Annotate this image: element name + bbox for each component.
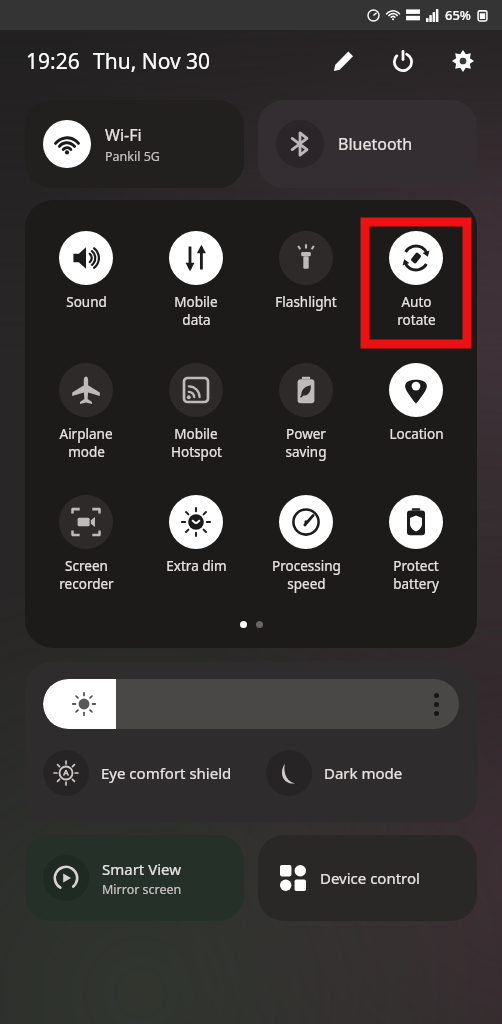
staticText: Protect <box>393 557 439 575</box>
staticText: data <box>182 311 211 329</box>
staticText: Pankil 5G <box>105 148 160 165</box>
staticText: saving <box>285 443 327 461</box>
button[interactable]: Smart View <box>25 835 244 921</box>
staticText: Wi-Fi <box>105 124 142 146</box>
button[interactable]: Bluetooth <box>258 100 477 188</box>
staticText: battery <box>393 575 439 593</box>
button[interactable]: Screen <box>31 495 141 593</box>
staticText: Screen <box>65 557 108 575</box>
staticText: Flashlight <box>275 293 337 311</box>
button[interactable]: Protect <box>361 495 471 593</box>
staticText: Extra dim <box>166 557 227 575</box>
staticText: Bluetooth <box>338 133 413 155</box>
staticText: Processing <box>272 557 341 575</box>
staticText: Location <box>389 425 444 443</box>
button[interactable]: Device control <box>258 835 477 921</box>
button[interactable]: Eye comfort shield <box>43 750 266 796</box>
button[interactable]: Location <box>361 363 471 443</box>
staticText: Eye comfort shield <box>101 763 232 783</box>
button[interactable]: Airplane <box>31 363 141 461</box>
button[interactable]: Extra dim <box>141 495 251 575</box>
button[interactable]: Power <box>386 44 420 78</box>
button[interactable]: Auto <box>361 231 471 329</box>
button[interactable]: Edit <box>326 44 360 78</box>
staticText: rotate <box>397 311 436 329</box>
staticText: Hotspot <box>171 443 222 461</box>
staticText: 65% <box>445 6 471 24</box>
button[interactable] <box>43 679 459 729</box>
staticText: Mobile <box>174 293 218 311</box>
button[interactable]: Wi-Fi <box>25 100 244 188</box>
staticText: Mobile <box>174 425 218 443</box>
staticText: Smart View <box>102 859 182 879</box>
staticText: Dark mode <box>324 763 403 783</box>
staticText: Thu, Nov 30 <box>93 47 211 76</box>
button[interactable]: Mobile <box>141 363 251 461</box>
staticText: Device control <box>320 868 420 888</box>
button[interactable]: Flashlight <box>251 231 361 311</box>
staticText: Auto <box>401 293 432 311</box>
button[interactable]: Settings <box>446 44 480 78</box>
staticText: Airplane <box>59 425 113 443</box>
button[interactable]: Sound <box>31 231 141 311</box>
button[interactable]: Processing <box>251 495 361 593</box>
staticText: mode <box>68 443 105 461</box>
staticText: recorder <box>59 575 114 593</box>
button[interactable]: Mobile <box>141 231 251 329</box>
button[interactable]: Power <box>251 363 361 461</box>
staticText: speed <box>287 575 326 593</box>
staticText: 19:26 <box>26 47 80 76</box>
staticText: Mirror screen <box>102 881 182 898</box>
staticText: Sound <box>66 293 107 311</box>
staticText: Power <box>286 425 326 443</box>
button[interactable]: Dark mode <box>266 750 459 796</box>
